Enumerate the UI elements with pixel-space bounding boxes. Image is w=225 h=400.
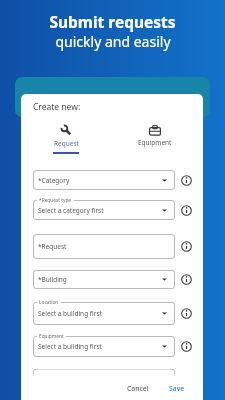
button[interactable]: *Category [33, 170, 175, 190]
staticText: Select a building first [38, 342, 102, 351]
staticText: Save [169, 384, 185, 393]
staticText: Create new: [33, 101, 81, 113]
staticText: quickly and easily [55, 32, 171, 51]
staticText: Submit requests [49, 11, 176, 32]
staticText: Cancel [127, 384, 149, 393]
button[interactable]: Cancel [121, 378, 155, 399]
staticText: Select a building first [38, 309, 102, 318]
staticText: Equipment [138, 138, 172, 147]
staticText: Location [39, 299, 59, 306]
button[interactable]: *Request [33, 234, 175, 259]
staticText: *Request [38, 242, 67, 251]
button[interactable]: *Building [33, 270, 175, 289]
button[interactable]: Request [45, 124, 87, 154]
button[interactable]: Save [163, 378, 191, 399]
staticText: Select a category first [38, 206, 104, 215]
staticText: *Building [38, 275, 67, 284]
staticText: *Category [38, 176, 70, 185]
staticText: Request [54, 139, 79, 148]
button[interactable]: Equipment [134, 125, 176, 147]
button[interactable]: Select a building first [33, 302, 175, 325]
button[interactable]: Select a category first [33, 200, 175, 220]
button[interactable]: Select a building first [33, 336, 175, 357]
staticText: *Request type [39, 197, 72, 204]
staticText: Equipment [39, 333, 64, 340]
